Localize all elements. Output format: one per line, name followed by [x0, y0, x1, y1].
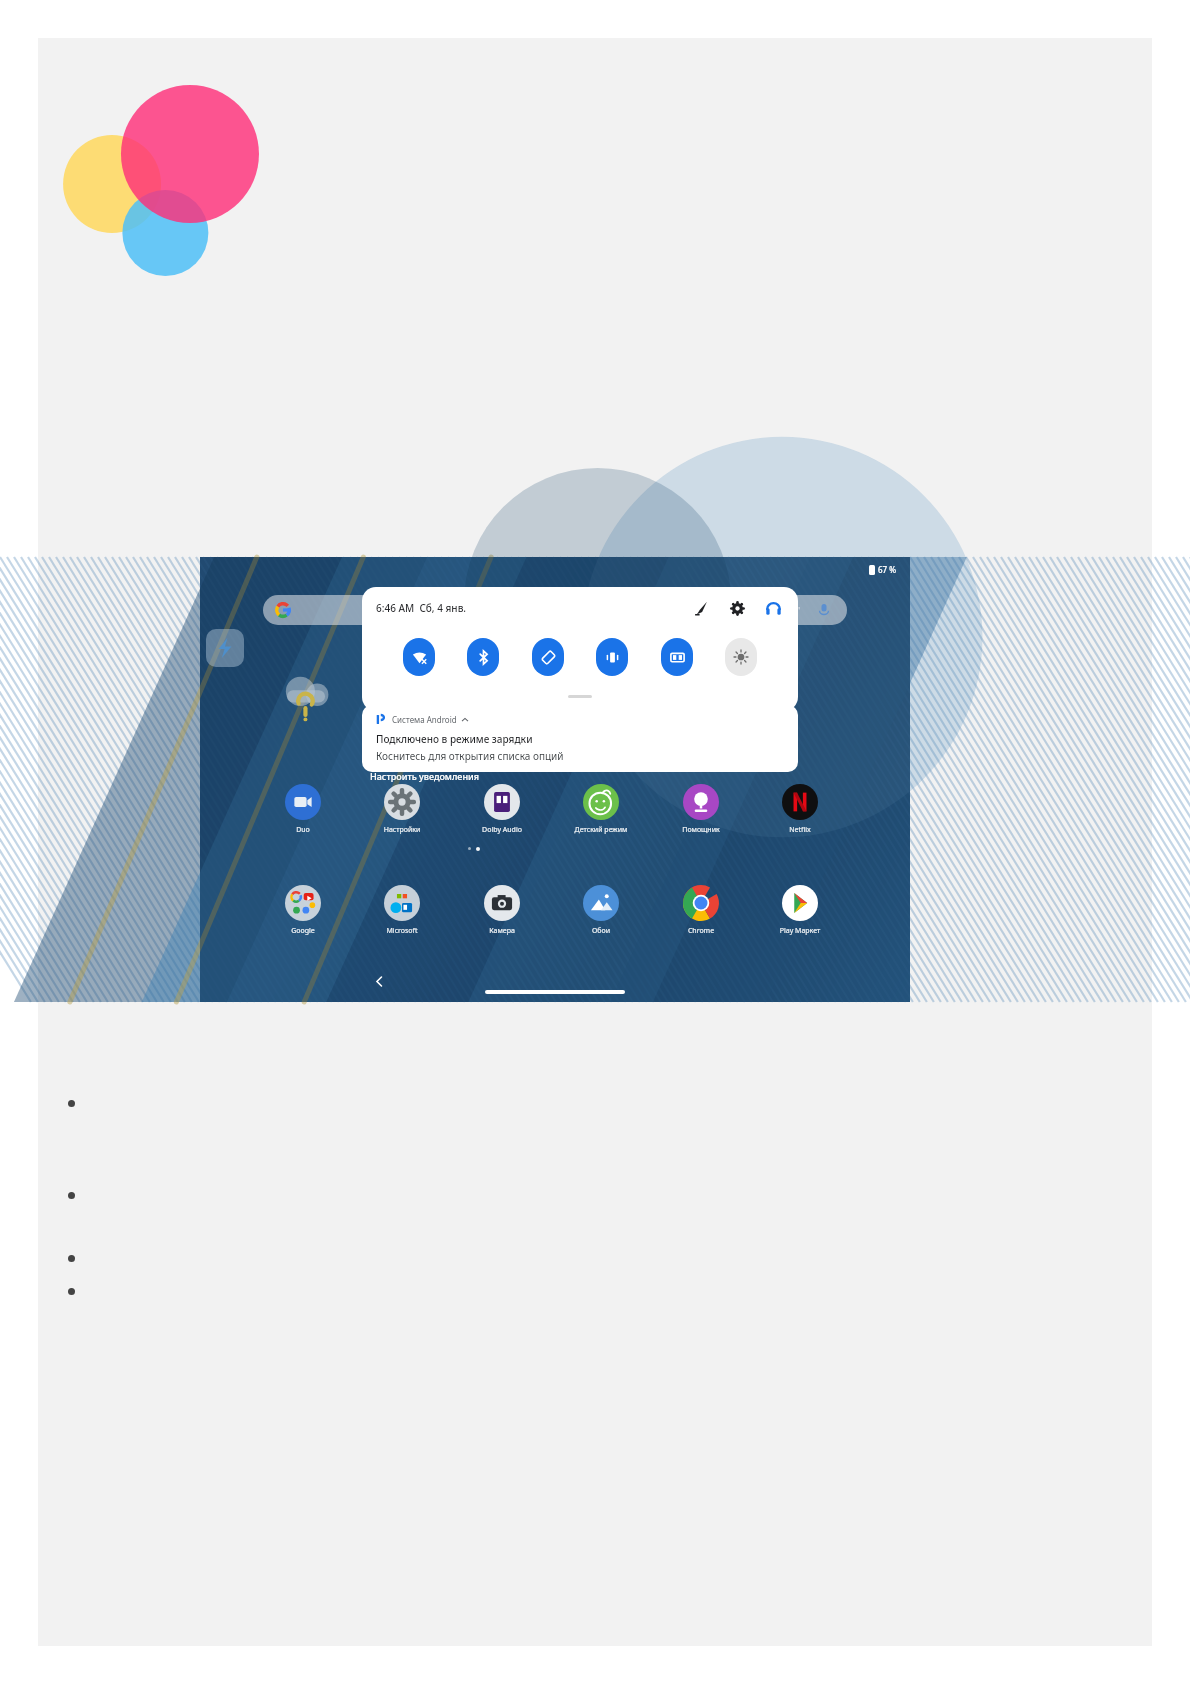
staticText: Dolby Audio	[465, 825, 539, 835]
button[interactable]: Widget	[206, 629, 244, 667]
button[interactable]: Настроить уведомления	[370, 770, 480, 782]
staticText: Microsoft	[365, 926, 439, 936]
staticText: Duo	[266, 825, 340, 835]
button[interactable]: Auto rotate	[532, 638, 564, 676]
button[interactable]: к Google"	[263, 595, 847, 625]
button[interactable]: Google	[266, 885, 340, 936]
staticText: 6:46 AM Сб, 4 янв.	[376, 601, 467, 615]
staticText: Система Android	[392, 714, 457, 725]
staticText: Подключено в режиме зарядки	[376, 732, 533, 746]
staticText: Камера	[465, 926, 539, 936]
button[interactable]: Duo	[266, 784, 340, 835]
staticText: Настройки	[365, 825, 439, 835]
button[interactable]: Netflix	[763, 784, 837, 835]
staticText: к Google"	[759, 604, 801, 616]
staticText: 67 %	[878, 564, 897, 575]
button[interactable]: Split screen	[661, 638, 693, 676]
button[interactable]: Play Маркет	[763, 885, 837, 936]
button[interactable]: Помощник	[664, 784, 738, 835]
staticText: Chrome	[664, 926, 738, 936]
staticText: Google	[266, 926, 340, 936]
button[interactable]: Настройки	[365, 784, 439, 835]
button[interactable]: Камера	[465, 885, 539, 936]
button[interactable]: Chrome	[664, 885, 738, 936]
button[interactable]: Brightness	[725, 638, 757, 676]
button[interactable]: Bluetooth	[467, 638, 499, 676]
staticText: Детский режим	[564, 825, 638, 835]
button[interactable]: Детский режим	[564, 784, 638, 835]
button[interactable]: Settings	[726, 597, 748, 619]
button[interactable]: Microsoft	[365, 885, 439, 936]
staticText: Netflix	[763, 825, 837, 835]
button[interactable]: Wi-Fi	[403, 638, 435, 676]
button[interactable]: Dolby Audio	[465, 784, 539, 835]
staticText: Коснитесь для открытия списка опций	[376, 749, 564, 763]
button[interactable]: Обои	[564, 885, 638, 936]
button[interactable]: Vibrate	[596, 638, 628, 676]
button[interactable]: Audio output	[762, 597, 784, 619]
staticText: Помощник	[664, 825, 738, 835]
staticText: Обои	[564, 926, 638, 936]
staticText: Play Маркет	[763, 926, 837, 936]
button[interactable]: Back	[368, 970, 390, 992]
button[interactable]: Система Android	[362, 705, 798, 772]
staticText: Настроить уведомления	[370, 770, 480, 782]
button[interactable]: Home	[485, 990, 625, 994]
button[interactable]: Edit	[690, 597, 712, 619]
